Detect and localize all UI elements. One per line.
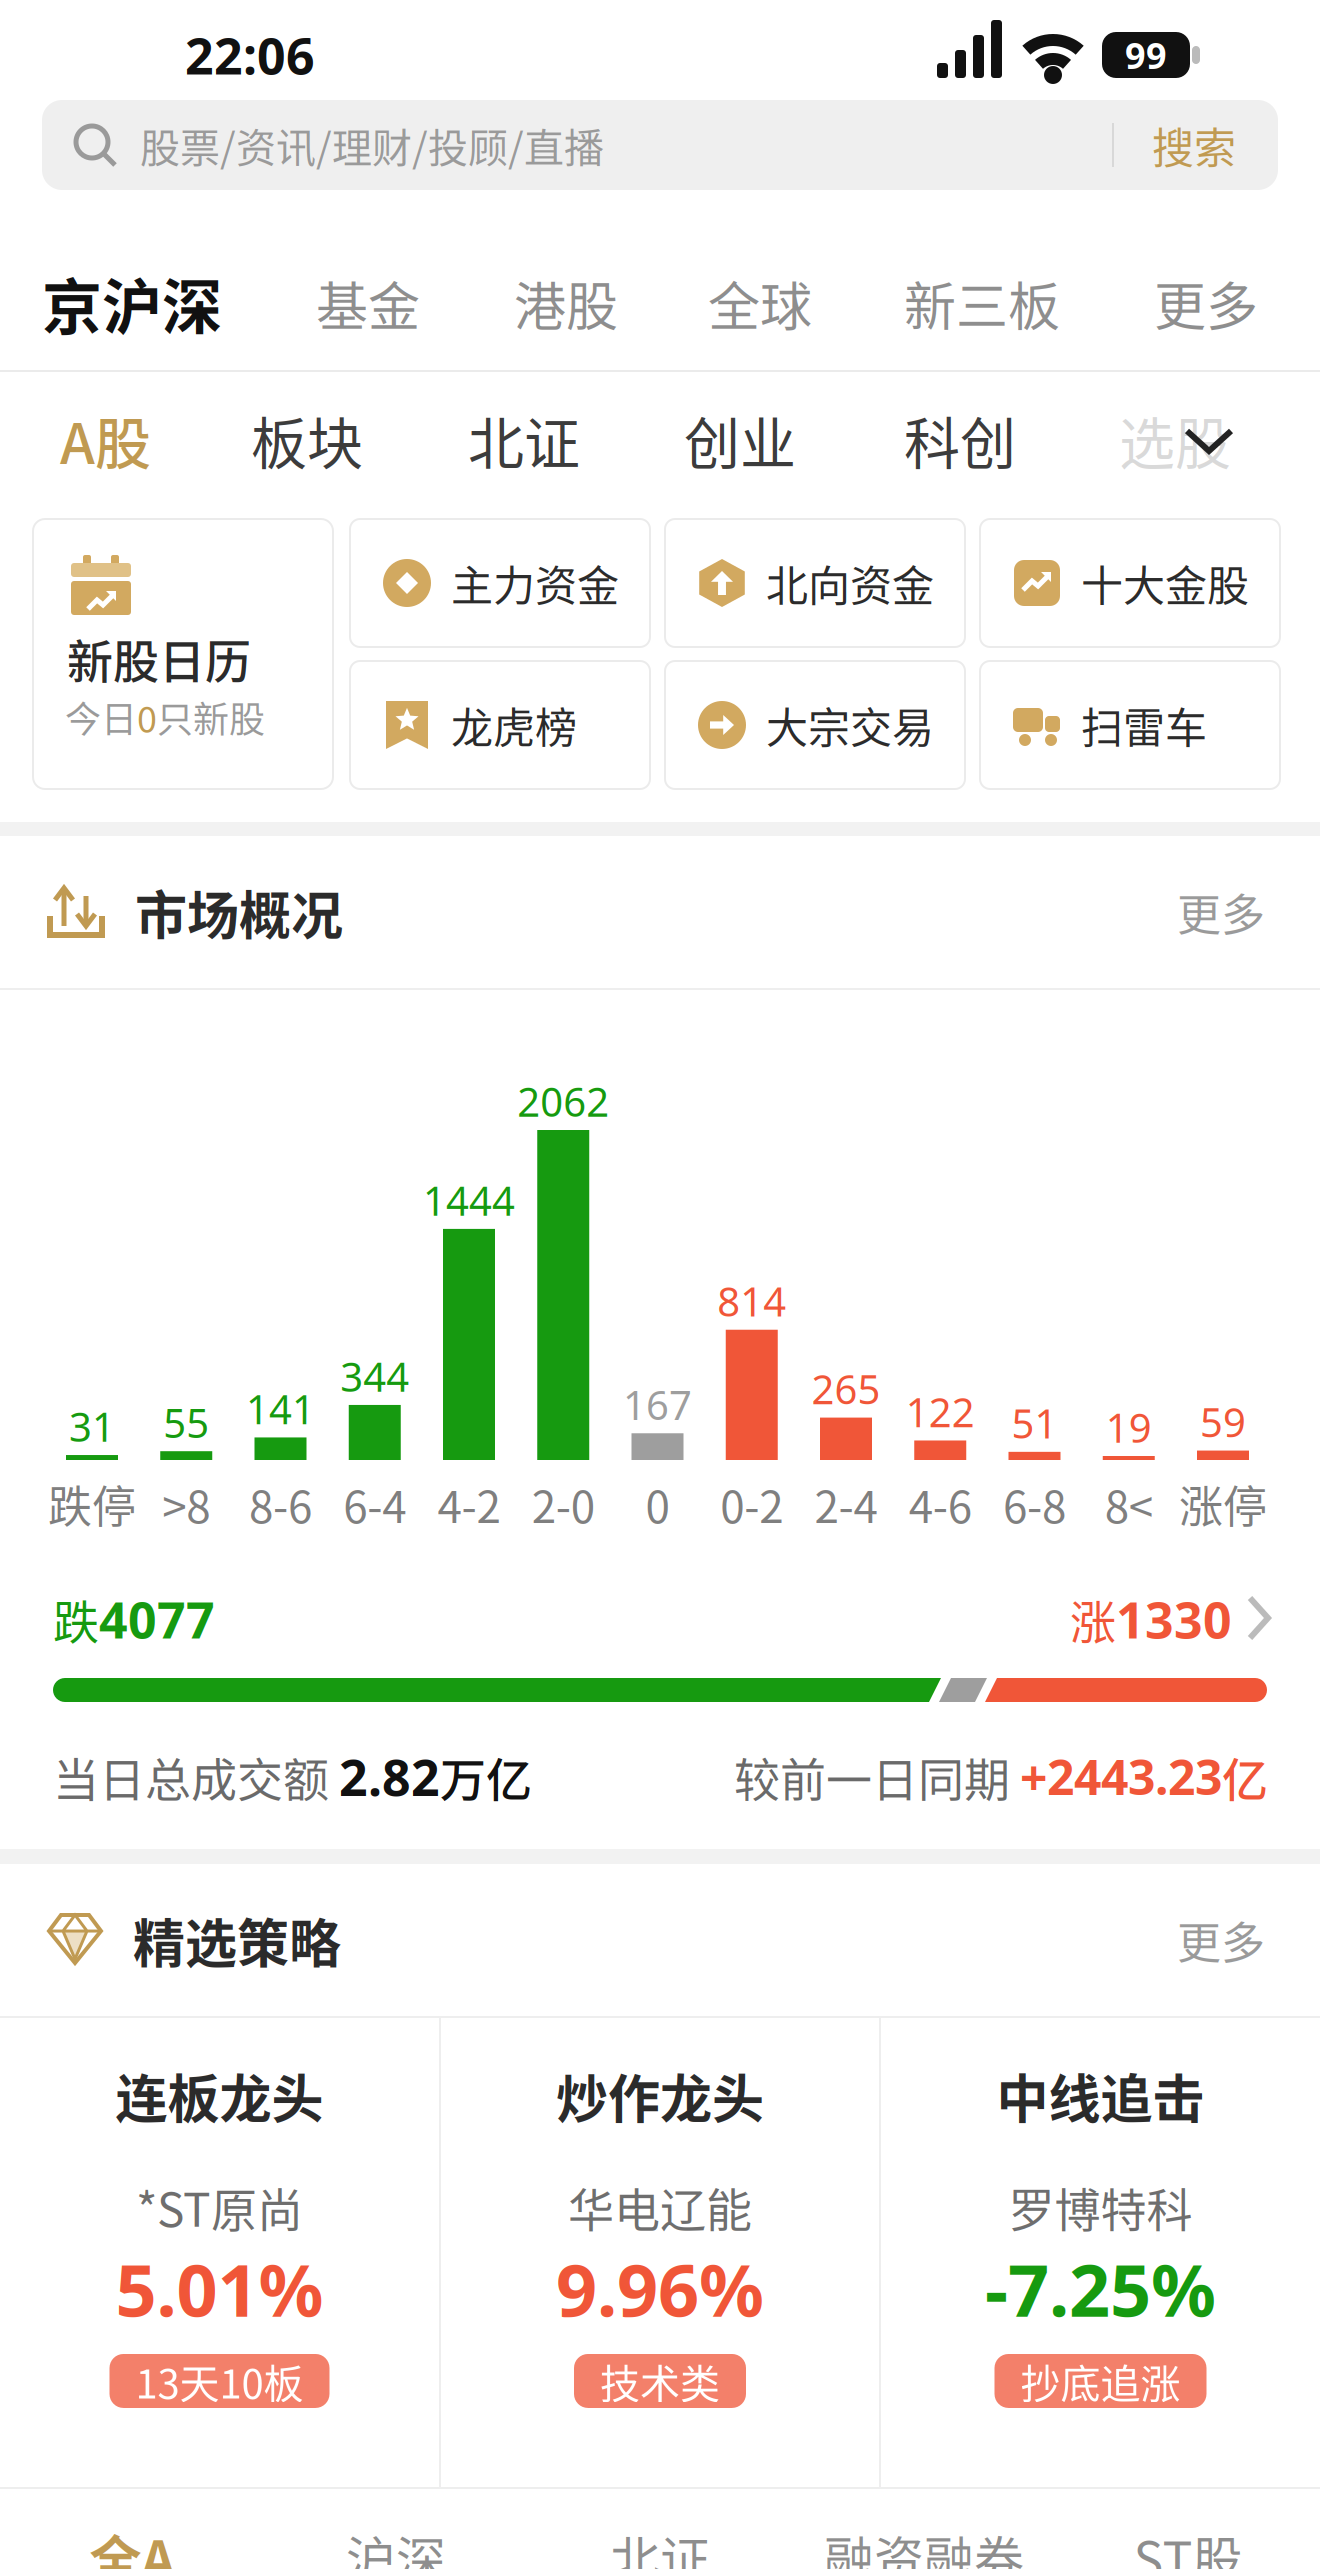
staticText: 主力资金 bbox=[451, 553, 619, 613]
button[interactable]: 更多 bbox=[1177, 880, 1265, 944]
button[interactable]: 龙虎榜 bbox=[350, 661, 650, 789]
staticText: 59 bbox=[1200, 1395, 1246, 1449]
button[interactable]: 扫雷车 bbox=[980, 661, 1280, 789]
staticText: 较前一日同期 bbox=[734, 1743, 1020, 1810]
button[interactable]: 融资融券 bbox=[792, 2520, 1056, 2569]
staticText: 2-4 bbox=[814, 1472, 877, 1536]
button[interactable]: ST股 bbox=[1056, 2520, 1320, 2569]
button[interactable]: 板块 bbox=[151, 399, 363, 480]
staticText: 万亿 bbox=[440, 1743, 532, 1810]
staticText: 9.96% bbox=[556, 2240, 764, 2338]
button[interactable]: 选股 bbox=[1016, 399, 1231, 480]
button[interactable]: 港股 bbox=[420, 265, 618, 341]
button[interactable]: 大宗交易 bbox=[665, 661, 965, 789]
staticText: >8 bbox=[162, 1472, 210, 1536]
button[interactable]: 新三板 bbox=[812, 265, 1060, 341]
button[interactable]: 炒作龙头 bbox=[556, 2018, 764, 2487]
staticText: 新股日历 bbox=[67, 625, 251, 692]
staticText: 搜索 bbox=[1152, 115, 1236, 175]
staticText: 港股 bbox=[514, 265, 618, 341]
button[interactable]: 科创 bbox=[796, 399, 1016, 480]
staticText: 更多 bbox=[1154, 265, 1258, 341]
staticText: 创业 bbox=[684, 399, 796, 480]
staticText: 跌停 bbox=[48, 1472, 136, 1536]
staticText: 龙虎榜 bbox=[451, 695, 577, 755]
staticText: 344 bbox=[340, 1349, 409, 1403]
staticText: 2062 bbox=[517, 1074, 609, 1128]
staticText: 涨 bbox=[1070, 1586, 1116, 1652]
staticText: 扫雷车 bbox=[1081, 695, 1207, 755]
staticText: 当日总成交额 bbox=[53, 1743, 339, 1810]
staticText: 抄底追涨 bbox=[1020, 2352, 1180, 2410]
staticText: 4077 bbox=[99, 1585, 215, 1653]
staticText: 连板龙头 bbox=[115, 2058, 323, 2133]
staticText: ST股 bbox=[1133, 2520, 1242, 2569]
staticText: 13天10板 bbox=[135, 2352, 303, 2410]
staticText: 更多 bbox=[1177, 1908, 1265, 1972]
button[interactable]: 北证 bbox=[528, 2520, 792, 2569]
staticText: 8< bbox=[1105, 1472, 1153, 1536]
staticText: 更多 bbox=[1177, 880, 1265, 944]
button[interactable]: 跌 bbox=[0, 1560, 1320, 1678]
staticText: 今日 bbox=[65, 691, 137, 743]
staticText: 基金 bbox=[316, 265, 420, 341]
button[interactable]: 创业 bbox=[580, 399, 796, 480]
staticText: 精选策略 bbox=[133, 1902, 341, 1978]
staticText: +2443.23 bbox=[1020, 1744, 1222, 1809]
staticText: 4-2 bbox=[437, 1472, 500, 1536]
button[interactable]: 更多 bbox=[1060, 265, 1258, 341]
staticText: 141 bbox=[246, 1381, 315, 1436]
staticText: 265 bbox=[811, 1362, 880, 1416]
staticText: *ST原尚 bbox=[136, 2173, 303, 2240]
staticText: 罗博特科 bbox=[1008, 2173, 1192, 2240]
staticText: -7.25% bbox=[985, 2240, 1216, 2338]
staticText: 全A bbox=[89, 2519, 174, 2569]
staticText: 融资融券 bbox=[824, 2520, 1024, 2569]
staticText: 22:06 bbox=[185, 21, 315, 89]
staticText: 科创 bbox=[904, 399, 1016, 480]
staticText: 1444 bbox=[423, 1173, 515, 1227]
button[interactable]: 股票/资讯/理财/投顾/直播 bbox=[42, 100, 1278, 190]
staticText: 北证 bbox=[468, 399, 580, 480]
button[interactable]: 沪深 bbox=[264, 2520, 528, 2569]
button[interactable]: 主力资金 bbox=[350, 519, 650, 647]
staticText: 华电辽能 bbox=[568, 2173, 752, 2240]
button[interactable]: 十大金股 bbox=[980, 519, 1280, 647]
staticText: 北证 bbox=[610, 2520, 710, 2569]
button[interactable]: 北向资金 bbox=[665, 519, 965, 647]
staticText: 8-6 bbox=[249, 1472, 312, 1536]
staticText: 新三板 bbox=[904, 265, 1060, 341]
staticText: 市场概况 bbox=[135, 874, 343, 950]
staticText: 167 bbox=[623, 1377, 692, 1432]
staticText: 中线追击 bbox=[996, 2058, 1204, 2133]
staticText: 涨停 bbox=[1179, 1472, 1267, 1536]
button[interactable]: A股 bbox=[60, 399, 151, 480]
staticText: 北向资金 bbox=[766, 553, 934, 613]
staticText: 跌 bbox=[53, 1586, 99, 1652]
button[interactable]: 更多 bbox=[1177, 1908, 1265, 1972]
button[interactable]: 连板龙头 bbox=[109, 2018, 329, 2487]
staticText: 51 bbox=[1011, 1396, 1057, 1450]
staticText: 0 bbox=[645, 1472, 669, 1536]
button[interactable]: 基金 bbox=[222, 265, 420, 341]
staticText: A股 bbox=[60, 399, 151, 480]
staticText: 炒作龙头 bbox=[556, 2058, 764, 2133]
staticText: 4-6 bbox=[909, 1472, 972, 1536]
staticText: 选股 bbox=[1119, 399, 1231, 480]
staticText: 2.82 bbox=[339, 1742, 440, 1810]
staticText: 55 bbox=[163, 1395, 209, 1450]
staticText: 板块 bbox=[251, 399, 363, 480]
button[interactable]: 北证 bbox=[363, 399, 580, 480]
staticText: 0 bbox=[137, 691, 157, 743]
staticText: 只新股 bbox=[157, 691, 265, 743]
button[interactable]: 中线追击 bbox=[985, 2018, 1216, 2487]
button[interactable]: 京沪深 bbox=[42, 260, 222, 346]
button[interactable]: 新股日历 bbox=[33, 519, 333, 789]
staticText: 全球 bbox=[708, 265, 812, 341]
staticText: 31 bbox=[69, 1399, 115, 1453]
button[interactable]: 全A bbox=[0, 2519, 264, 2569]
staticText: 大宗交易 bbox=[766, 695, 934, 755]
button[interactable]: 全球 bbox=[618, 265, 812, 341]
staticText: 6-8 bbox=[1003, 1472, 1066, 1536]
staticText: 5.01% bbox=[115, 2240, 323, 2338]
